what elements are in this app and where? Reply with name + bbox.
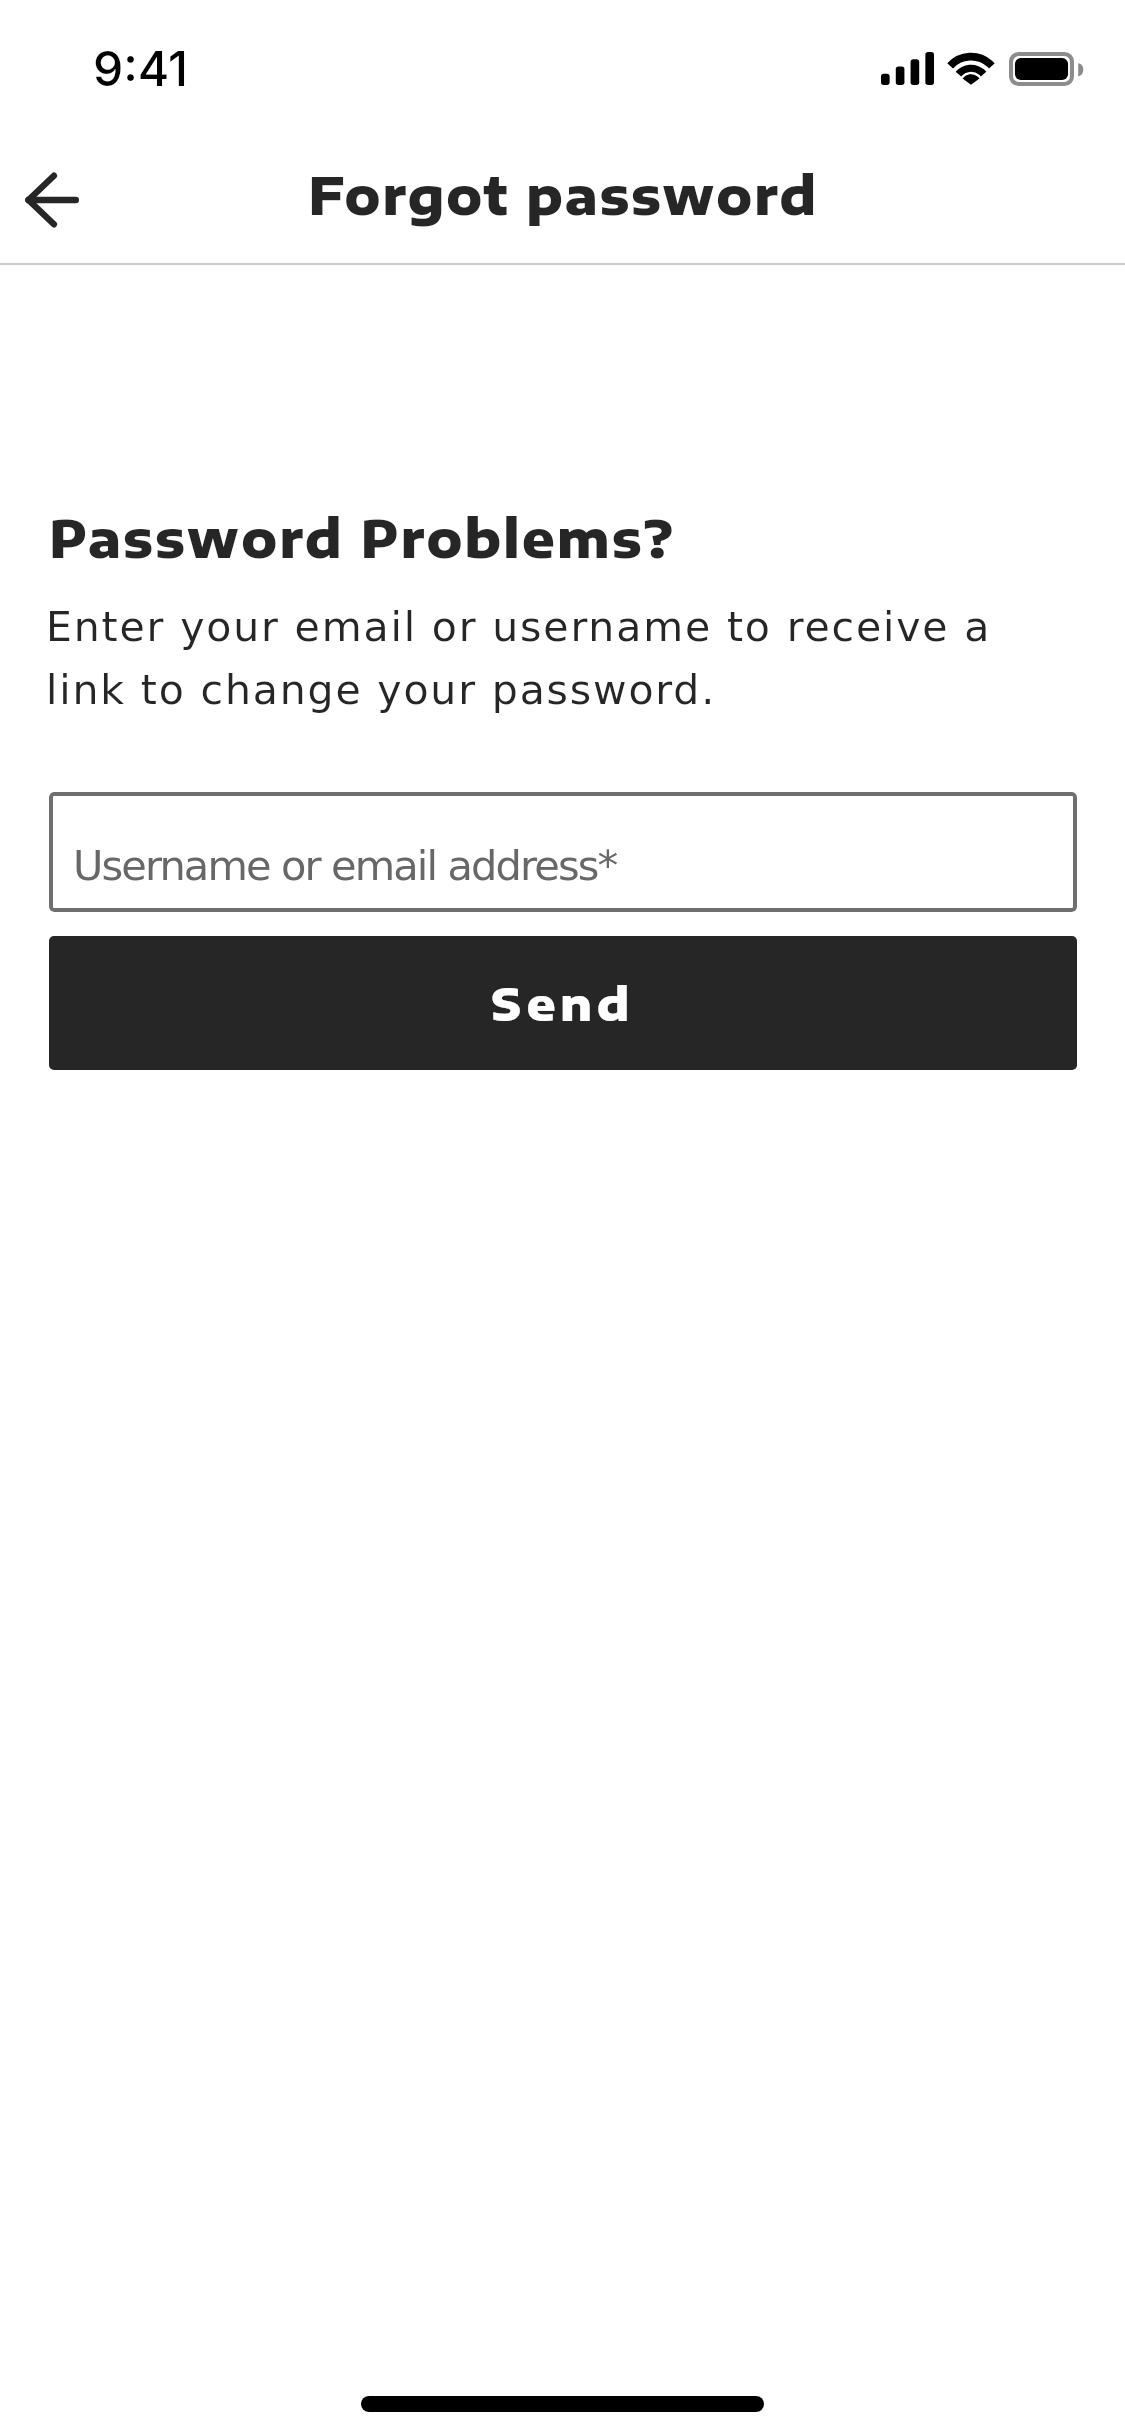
staticText: Password Problems?	[49, 505, 676, 569]
button[interactable]: Username or email address*	[49, 792, 1077, 912]
staticText: 9:41	[93, 39, 188, 97]
button[interactable]: Back	[0, 134, 103, 266]
staticText: Send	[491, 975, 635, 1031]
staticText: Username or email address*	[73, 841, 617, 889]
staticText: Forgot password	[308, 162, 818, 226]
button[interactable]: Send	[49, 936, 1077, 1070]
staticText: Enter your email or username to receive …	[46, 603, 992, 714]
